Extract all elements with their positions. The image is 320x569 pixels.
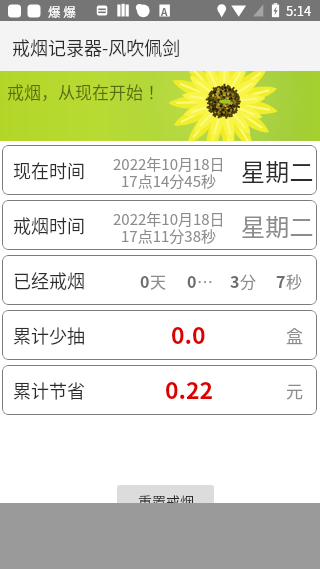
staticText: … xyxy=(197,269,214,292)
staticText: 5:14 xyxy=(286,1,312,20)
staticText: 元 xyxy=(286,378,303,403)
button[interactable]: 现在时间 xyxy=(2,145,317,195)
staticText: 0 xyxy=(187,269,197,292)
staticText: 已经戒烟 xyxy=(13,267,85,293)
staticText: 17点11分38秒 xyxy=(121,225,216,247)
staticText: 天 xyxy=(150,269,167,292)
staticText: 爆 爆 xyxy=(48,2,76,20)
staticText: 3 xyxy=(230,269,240,292)
staticText: 星期二 xyxy=(241,153,314,188)
button[interactable]: 已经戒烟 xyxy=(2,255,317,305)
staticText: 0.0 xyxy=(171,317,206,350)
staticText: 盒 xyxy=(286,323,303,348)
staticText: 重置戒烟 xyxy=(138,491,194,511)
staticText: 星期二 xyxy=(241,208,314,243)
staticText: 2022年10月18日 xyxy=(113,208,225,230)
staticText: 秒 xyxy=(286,269,303,292)
button[interactable]: 戒烟时间 xyxy=(2,200,317,250)
button[interactable]: 累计少抽 xyxy=(2,310,317,360)
staticText: 戒烟记录器-风吹佩剑 xyxy=(12,34,181,60)
staticText: 分 xyxy=(240,269,257,292)
staticText: 现在时间 xyxy=(13,157,85,183)
button[interactable]: 重置戒烟 xyxy=(117,485,214,517)
staticText: 2022年10月18日 xyxy=(113,153,225,175)
staticText: 7 xyxy=(276,269,286,292)
staticText: 0 xyxy=(140,269,150,292)
staticText: 0.22 xyxy=(165,372,214,405)
staticText: A xyxy=(161,4,168,18)
staticText: 17点14分45秒 xyxy=(121,170,216,192)
staticText: 累计节省 xyxy=(13,377,85,403)
staticText: 戒烟，从现在开始！ xyxy=(7,79,160,104)
staticText: 累计少抽 xyxy=(13,322,85,348)
button[interactable]: 累计节省 xyxy=(2,365,317,415)
staticText: 戒烟时间 xyxy=(13,212,85,238)
